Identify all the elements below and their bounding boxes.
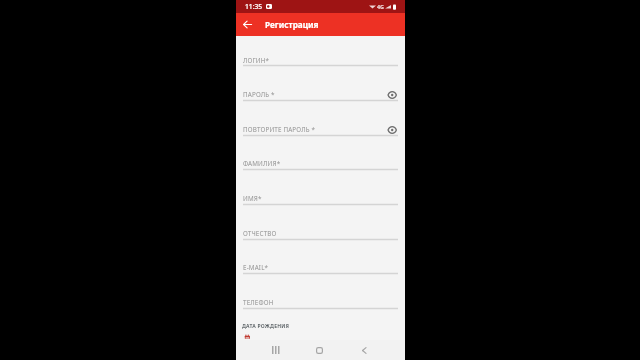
- button[interactable]: ОТЧЕСТВО: [243, 227, 398, 239]
- staticText: E-MAIL*: [243, 263, 269, 272]
- staticText: ЛОГИН*: [243, 56, 270, 65]
- button[interactable]: E-MAIL*: [243, 261, 398, 273]
- staticText: 11:35: [245, 2, 263, 11]
- button[interactable]: ФАМИЛИЯ*: [243, 157, 398, 169]
- button[interactable]: ТЕЛЕФОН: [243, 296, 398, 308]
- button[interactable]: ПОВТОРИТЕ ПАРОЛЬ *: [243, 123, 398, 135]
- staticText: ОТЧЕСТВО: [243, 229, 277, 238]
- button[interactable]: Выбрать дату: [244, 333, 256, 342]
- button[interactable]: Назад: [236, 13, 259, 36]
- staticText: ТЕЛЕФОН: [243, 298, 274, 307]
- button[interactable]: Главный экран: [307, 340, 331, 360]
- button[interactable]: ЛОГИН*: [243, 54, 398, 66]
- staticText: ИМЯ*: [243, 194, 262, 203]
- button[interactable]: Последние приложения: [264, 340, 288, 360]
- staticText: ПАРОЛЬ *: [243, 90, 275, 99]
- button[interactable]: Назад: [352, 340, 376, 360]
- staticText: Регистрация: [265, 19, 319, 30]
- staticText: ФАМИЛИЯ*: [243, 159, 281, 168]
- button[interactable]: ИМЯ*: [243, 192, 398, 204]
- staticText: ПОВТОРИТЕ ПАРОЛЬ *: [243, 125, 316, 134]
- staticText: 4G: [377, 3, 384, 10]
- button[interactable]: ПАРОЛЬ *: [243, 88, 398, 100]
- staticText: ДАТА РОЖДЕНИЯ: [242, 323, 290, 330]
